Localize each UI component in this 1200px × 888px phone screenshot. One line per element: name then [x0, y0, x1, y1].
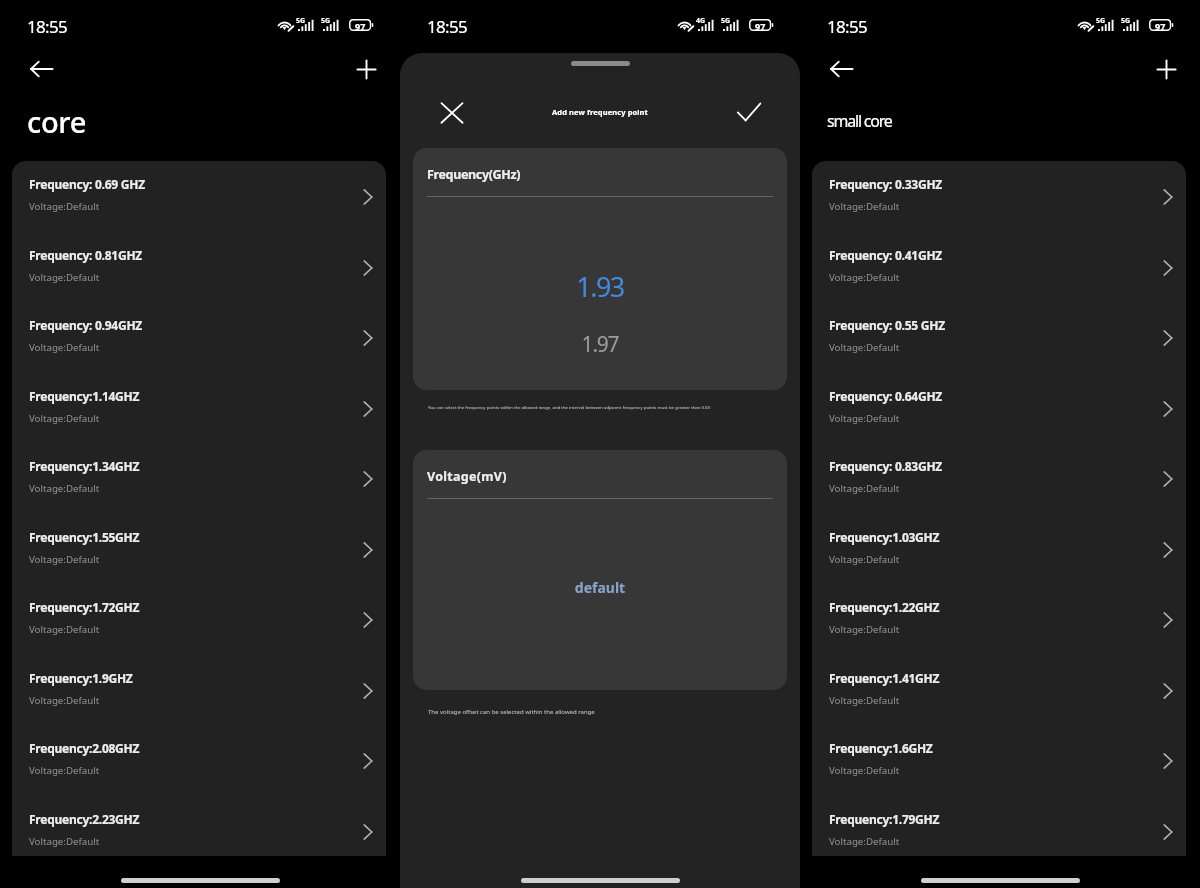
staticText: 1.97 [413, 330, 787, 359]
staticText: Voltage:Default [829, 623, 900, 636]
staticText: Add new frequency point [552, 107, 648, 117]
staticText: Frequency:2.08GHZ [29, 740, 140, 756]
button[interactable]: Close [436, 96, 468, 128]
button[interactable]: Frequency:1.22GHZ [812, 584, 1186, 655]
button[interactable]: Frequency: 0.69 GHZ [12, 161, 386, 232]
staticText: Frequency:1.79GHZ [829, 811, 940, 827]
button[interactable]: Frequency:1.14GHZ [12, 373, 386, 444]
staticText: Frequency:1.34GHZ [29, 458, 140, 474]
staticText: Voltage:Default [29, 553, 100, 566]
staticText: small core [827, 110, 892, 132]
staticText: Voltage:Default [29, 835, 100, 848]
staticText: Voltage(mV) [427, 468, 507, 485]
button[interactable]: Frequency:1.34GHZ [12, 443, 386, 514]
staticText: 18:55 [827, 15, 867, 38]
staticText: 5G [1096, 16, 1106, 26]
staticText: Voltage:Default [29, 764, 100, 777]
staticText: core [27, 102, 87, 141]
staticText: Frequency:1.72GHZ [29, 599, 140, 615]
staticText: Frequency: 0.55 GHZ [829, 317, 945, 333]
staticText: 18:55 [427, 15, 467, 38]
staticText: 5G [321, 16, 331, 26]
button[interactable]: Frequency:2.23GHZ [12, 796, 386, 856]
staticText: Voltage:Default [829, 271, 900, 284]
button[interactable]: Back [24, 52, 58, 86]
staticText: 18:55 [27, 15, 67, 38]
staticText: Frequency(GHz) [427, 166, 521, 183]
staticText: Frequency:1.22GHZ [829, 599, 940, 615]
staticText: Voltage:Default [29, 623, 100, 636]
staticText: Frequency:1.41GHZ [829, 670, 940, 686]
staticText: 97 [355, 20, 366, 32]
staticText: Frequency: 0.81GHZ [29, 247, 143, 263]
staticText: Voltage:Default [29, 412, 100, 425]
button[interactable]: Frequency:2.08GHZ [12, 725, 386, 796]
staticText: Frequency: 0.94GHZ [29, 317, 143, 333]
staticText: 97 [755, 20, 766, 32]
button[interactable]: Add [349, 52, 383, 86]
button[interactable]: Frequency:1.79GHZ [812, 796, 1186, 856]
staticText: Frequency: 0.41GHZ [829, 247, 943, 263]
staticText: 5G [721, 16, 731, 26]
staticText: You can select the frequency points with… [428, 404, 711, 410]
button[interactable]: Frequency:1.9GHZ [12, 655, 386, 726]
button[interactable]: Frequency: 0.41GHZ [812, 232, 1186, 303]
staticText: The voltage offset can be selected withi… [428, 708, 595, 716]
staticText: Voltage:Default [829, 412, 900, 425]
staticText: 5G [1121, 16, 1131, 26]
staticText: default [413, 578, 787, 597]
button[interactable]: Frequency:1.72GHZ [12, 584, 386, 655]
button[interactable]: Add [1149, 52, 1183, 86]
staticText: Frequency: 0.83GHZ [829, 458, 943, 474]
staticText: Frequency:2.23GHZ [29, 811, 140, 827]
staticText: Frequency:1.6GHZ [829, 740, 933, 756]
staticText: 97 [1155, 20, 1166, 32]
staticText: Frequency:1.9GHZ [29, 670, 133, 686]
button[interactable]: Confirm [733, 96, 765, 128]
staticText: Voltage:Default [829, 341, 900, 354]
button[interactable]: Frequency: 0.81GHZ [12, 232, 386, 303]
staticText: Voltage:Default [829, 764, 900, 777]
button[interactable]: Frequency: 0.64GHZ [812, 373, 1186, 444]
staticText: Frequency:1.55GHZ [29, 529, 140, 545]
button[interactable]: Frequency:1.41GHZ [812, 655, 1186, 726]
staticText: Voltage:Default [29, 341, 100, 354]
staticText: Frequency: 0.33GHZ [829, 176, 943, 192]
staticText: Voltage:Default [29, 482, 100, 495]
staticText: Voltage:Default [29, 200, 100, 213]
staticText: Voltage:Default [29, 694, 100, 707]
staticText: Voltage:Default [829, 482, 900, 495]
button[interactable]: Frequency:1.03GHZ [812, 514, 1186, 585]
staticText: Voltage:Default [29, 271, 100, 284]
staticText: 4G [696, 16, 706, 26]
staticText: 1.93 [413, 268, 787, 305]
staticText: 5G [296, 16, 306, 26]
staticText: Voltage:Default [829, 694, 900, 707]
staticText: Voltage:Default [829, 200, 900, 213]
staticText: Frequency:1.14GHZ [29, 388, 140, 404]
staticText: Frequency:1.03GHZ [829, 529, 940, 545]
button[interactable]: Frequency: 0.33GHZ [812, 161, 1186, 232]
button[interactable]: Frequency: 0.83GHZ [812, 443, 1186, 514]
button[interactable]: Back [824, 52, 858, 86]
button[interactable]: Frequency:1.55GHZ [12, 514, 386, 585]
button[interactable]: Frequency: 0.94GHZ [12, 302, 386, 373]
button[interactable]: Frequency: 0.55 GHZ [812, 302, 1186, 373]
staticText: Frequency: 0.64GHZ [829, 388, 943, 404]
button[interactable]: Frequency:1.6GHZ [812, 725, 1186, 796]
staticText: Voltage:Default [829, 553, 900, 566]
staticText: Voltage:Default [829, 835, 900, 848]
staticText: Frequency: 0.69 GHZ [29, 176, 145, 192]
